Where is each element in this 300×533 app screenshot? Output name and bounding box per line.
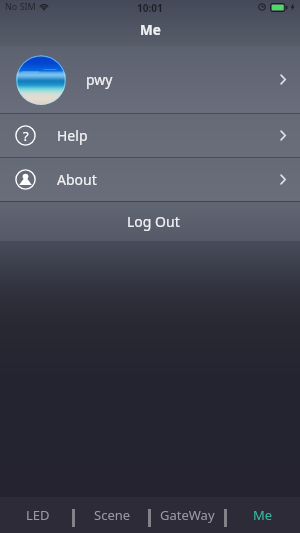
staticText: ?: [23, 127, 29, 145]
button[interactable]: ?: [0, 114, 300, 157]
button[interactable]: Log Out: [0, 202, 300, 241]
staticText: Me: [253, 506, 273, 524]
button[interactable]: pwy: [0, 46, 300, 113]
staticText: Scene: [94, 506, 131, 524]
staticText: LED: [26, 506, 50, 524]
button[interactable]: About: [0, 158, 300, 201]
button[interactable]: LED: [0, 497, 75, 533]
staticText: 10:01: [137, 1, 163, 15]
button[interactable]: Me: [225, 497, 300, 533]
button[interactable]: GateWay: [150, 497, 225, 533]
button[interactable]: Scene: [75, 497, 150, 533]
staticText: GateWay: [160, 506, 215, 524]
staticText: About: [57, 170, 97, 189]
staticText: Log Out: [127, 212, 180, 231]
staticText: Me: [140, 21, 161, 39]
staticText: pwy: [86, 70, 113, 89]
staticText: No SIM: [5, 0, 36, 12]
staticText: Help: [57, 126, 88, 145]
